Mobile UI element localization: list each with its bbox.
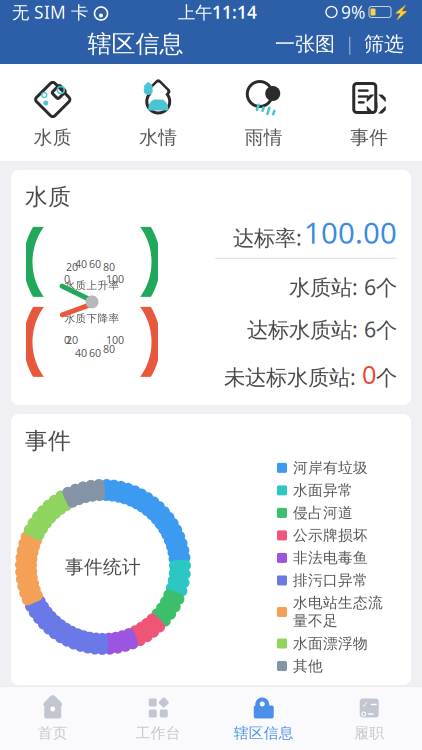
staticText: 事件 — [25, 427, 71, 455]
button[interactable]: 事件 — [316, 74, 422, 153]
staticText: 40 — [75, 257, 87, 271]
staticText: 个 — [376, 275, 397, 301]
staticText: 水质站: — [289, 273, 364, 301]
staticText: 首页 — [38, 724, 68, 742]
staticText: 水电站生态流量不足 — [293, 594, 383, 630]
button[interactable]: 辖区信息 — [211, 694, 316, 744]
staticText: 水质 — [34, 126, 72, 149]
staticText: 0 — [362, 357, 376, 391]
staticText: 60 — [89, 346, 101, 360]
staticText: 无 SIM 卡 — [12, 0, 88, 23]
button[interactable]: 一张图 — [271, 26, 339, 62]
staticText: 6 — [364, 315, 376, 343]
staticText: 水面异常 — [293, 481, 353, 499]
staticText: 水面漂浮物 — [293, 634, 368, 652]
staticText: 个 — [376, 317, 397, 343]
staticText: 事件统计 — [65, 555, 141, 578]
button[interactable]: 水情 — [105, 74, 211, 153]
staticText: 水质下降率 — [64, 312, 119, 325]
staticText: 未达标水质站: — [224, 363, 362, 391]
staticText: 水质上升率 — [64, 279, 119, 292]
staticText: 20 — [66, 260, 78, 274]
staticText: 辖区信息 — [87, 29, 183, 59]
staticText: 辖区信息 — [234, 724, 294, 742]
staticText: 6 — [364, 273, 376, 301]
button[interactable]: 首页 — [0, 694, 105, 744]
staticText: 0 — [64, 272, 70, 286]
staticText: | — [345, 32, 354, 55]
staticText: 雨情 — [195, 714, 241, 742]
button[interactable]: ✓ — [316, 694, 422, 744]
staticText: 非法电毒鱼 — [293, 549, 368, 567]
staticText: 40 — [75, 346, 87, 360]
staticText: 达标水质站: — [247, 315, 364, 343]
staticText: 筛选 — [364, 32, 404, 56]
staticText: 水质 — [25, 183, 71, 211]
button[interactable]: 水质 — [0, 74, 105, 153]
staticText: ✓ — [362, 700, 369, 709]
button[interactable]: 雨情 — [211, 74, 316, 153]
staticText: 工作台 — [136, 724, 181, 742]
staticText: 100 — [106, 272, 124, 286]
staticText: ⚡ — [393, 4, 410, 20]
button[interactable]: 工作台 — [105, 694, 211, 744]
staticText: 60 — [89, 257, 101, 271]
button[interactable]: 筛选 — [360, 26, 408, 62]
staticText: 上午11:14 — [178, 0, 257, 23]
staticText: 雨情 — [245, 126, 283, 149]
staticText: 河岸有垃圾 — [293, 459, 368, 477]
staticText: 履职 — [354, 724, 384, 742]
staticText: 80 — [103, 342, 115, 356]
staticText: 达标率: — [233, 223, 302, 252]
staticText: 100 — [106, 333, 124, 347]
staticText: 一张图 — [275, 32, 335, 56]
staticText: 其他 — [293, 657, 323, 675]
staticText: 公示牌损坏 — [293, 526, 368, 544]
staticText: 侵占河道 — [293, 504, 353, 522]
staticText: 事件 — [350, 126, 388, 149]
staticText: 0 — [64, 333, 70, 347]
staticText: 80 — [103, 260, 115, 274]
staticText: 20 — [66, 333, 78, 347]
staticText: 100.00 — [304, 213, 397, 252]
staticText: 水情 — [139, 126, 177, 149]
staticText: 9% — [341, 0, 365, 23]
staticText: 个 — [376, 365, 397, 391]
staticText: 排污口异常 — [293, 571, 368, 589]
